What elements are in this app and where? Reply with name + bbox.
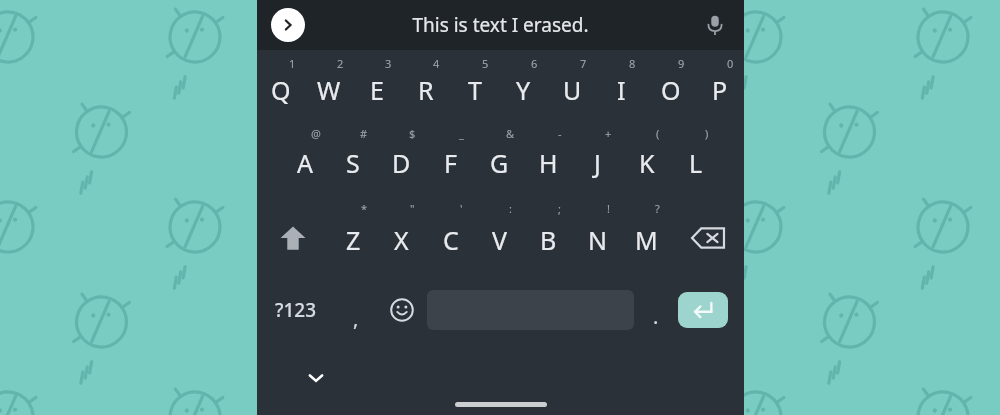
staticText: U [563,73,582,107]
staticText: : [509,201,512,216]
staticText: M [635,223,658,257]
staticText: ?123 [275,297,317,323]
button[interactable]: , [335,275,377,345]
button[interactable]: ! [573,195,622,275]
staticText: O [661,73,681,107]
staticText: W [317,73,341,107]
button[interactable]: 9 [646,50,695,120]
button[interactable]: Enter [678,292,728,328]
staticText: ' [460,201,463,216]
staticText: Z [346,223,361,257]
staticText: L [689,146,703,180]
button[interactable]: 8 [597,50,646,120]
button[interactable]: ) [671,120,720,195]
button[interactable]: 7 [548,50,597,120]
staticText: 7 [580,56,587,71]
staticText: * [361,201,368,216]
staticText: C [443,223,459,257]
button[interactable]: ( [622,120,671,195]
staticText: " [410,201,415,216]
button[interactable]: 6 [499,50,548,120]
staticText: ! [607,201,610,216]
staticText: I [617,73,626,107]
button[interactable]: 3 [353,50,401,120]
button[interactable]: Emoji [377,275,427,345]
staticText: 4 [433,56,440,71]
staticText: J [594,146,601,180]
staticText: N [588,223,608,257]
staticText: - [558,126,562,141]
staticText: 1 [289,56,296,71]
button[interactable]: . [634,275,678,345]
staticText: & [506,126,515,141]
staticText: This is text I erased. [412,12,589,38]
staticText: V [492,223,508,257]
button[interactable]: _ [426,120,475,195]
staticText: 9 [678,56,685,71]
staticText: T [468,73,482,107]
button[interactable]: 5 [450,50,499,120]
button[interactable]: * [329,195,377,275]
staticText: G [490,146,509,180]
staticText: K [639,146,655,180]
button[interactable]: ; [524,195,573,275]
button[interactable]: Backspace [671,195,744,275]
staticText: . [653,303,659,330]
button[interactable]: " [377,195,426,275]
staticText: R [418,73,434,107]
staticText: , [353,305,359,332]
button[interactable]: : [475,195,524,275]
staticText: E [370,73,384,107]
button[interactable]: $ [377,120,426,195]
staticText: Y [516,73,531,107]
button[interactable]: 1 [257,50,305,120]
staticText: ? [655,201,660,216]
button[interactable]: & [475,120,524,195]
staticText: 6 [531,56,538,71]
staticText: 0 [727,56,734,71]
staticText: F [444,146,457,180]
button[interactable]: ? [622,195,671,275]
button[interactable]: 4 [401,50,450,120]
button[interactable]: - [524,120,573,195]
button[interactable]: 2 [305,50,353,120]
button[interactable]: + [573,120,622,195]
staticText: D [392,146,411,180]
staticText: @ [311,126,321,141]
button[interactable]: Show suggestions [271,8,305,42]
staticText: X [394,223,409,257]
button[interactable]: Shift [257,195,329,275]
button[interactable]: Hide keyboard [301,363,331,393]
staticText: A [297,146,313,180]
staticText: + [605,126,612,141]
staticText: Q [271,73,291,107]
staticText: $ [409,126,416,141]
button[interactable]: This is text I erased. [412,12,589,38]
button[interactable]: 0 [695,50,744,120]
staticText: _ [459,126,464,141]
staticText: P [712,73,728,107]
button[interactable]: ?123 [257,275,335,345]
staticText: S [346,146,360,180]
button[interactable]: @ [281,120,329,195]
staticText: 8 [629,56,636,71]
staticText: H [539,146,558,180]
staticText: 5 [482,56,489,71]
staticText: ( [656,126,660,141]
staticText: B [540,223,557,257]
staticText: ; [558,201,561,216]
staticText: 3 [385,56,392,71]
staticText: 2 [337,56,344,71]
button[interactable]: Voice input [698,8,732,42]
staticText: ) [705,126,709,141]
button[interactable]: ' [426,195,475,275]
staticText: # [360,126,368,141]
button[interactable]: # [329,120,377,195]
